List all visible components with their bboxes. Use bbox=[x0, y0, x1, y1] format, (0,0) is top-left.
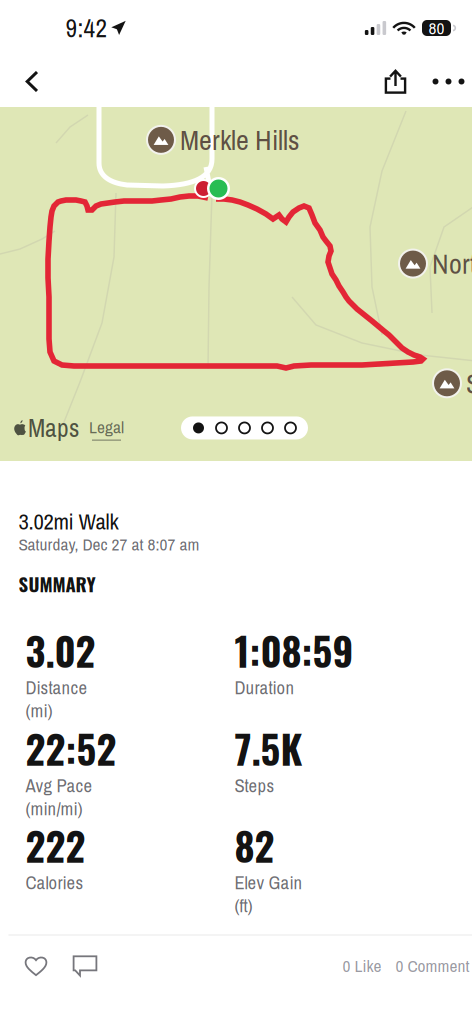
staticText: 0 Comment bbox=[395, 954, 469, 977]
button[interactable]: Share bbox=[368, 58, 422, 105]
staticText: 7.5K bbox=[234, 719, 302, 777]
staticText: 3.02 bbox=[25, 621, 95, 679]
button[interactable]: Like bbox=[8, 941, 59, 990]
staticText: 3.02mi Walk bbox=[18, 506, 118, 536]
staticText: Legal bbox=[89, 415, 124, 439]
staticText: 80 bbox=[428, 16, 444, 40]
staticText: (mi) bbox=[25, 698, 52, 723]
staticText: Saturday, Dec 27 at 8:07 am bbox=[18, 532, 199, 556]
button[interactable]: 0 Like bbox=[342, 936, 381, 995]
staticText: 82 bbox=[234, 816, 274, 874]
staticText: 1:08:59 bbox=[234, 621, 353, 679]
staticText: 9:42 bbox=[65, 11, 107, 45]
staticText: Nort bbox=[432, 245, 472, 282]
button[interactable]: Back bbox=[8, 58, 54, 104]
button[interactable]: Comment bbox=[59, 941, 110, 990]
staticText: Duration bbox=[234, 675, 294, 700]
staticText: Distance bbox=[25, 675, 87, 700]
staticText: (ft) bbox=[234, 893, 252, 918]
staticText: S bbox=[466, 364, 472, 402]
staticText: Maps bbox=[28, 411, 79, 445]
staticText: Elev Gain bbox=[234, 870, 302, 895]
button[interactable]: Legal bbox=[89, 415, 124, 441]
staticText: (min/mi) bbox=[25, 796, 82, 821]
button[interactable]: More options bbox=[422, 58, 472, 105]
staticText: 222 bbox=[25, 816, 85, 874]
staticText: Merkle Hills bbox=[180, 121, 299, 159]
button[interactable]: 0 Comment bbox=[381, 936, 472, 995]
staticText: 22:52 bbox=[25, 719, 116, 777]
staticText: 0 Like bbox=[342, 954, 381, 977]
staticText: Avg Pace bbox=[25, 773, 92, 798]
staticText: Steps bbox=[234, 773, 274, 798]
staticText: SUMMARY bbox=[18, 570, 95, 598]
staticText: Calories bbox=[25, 870, 83, 895]
